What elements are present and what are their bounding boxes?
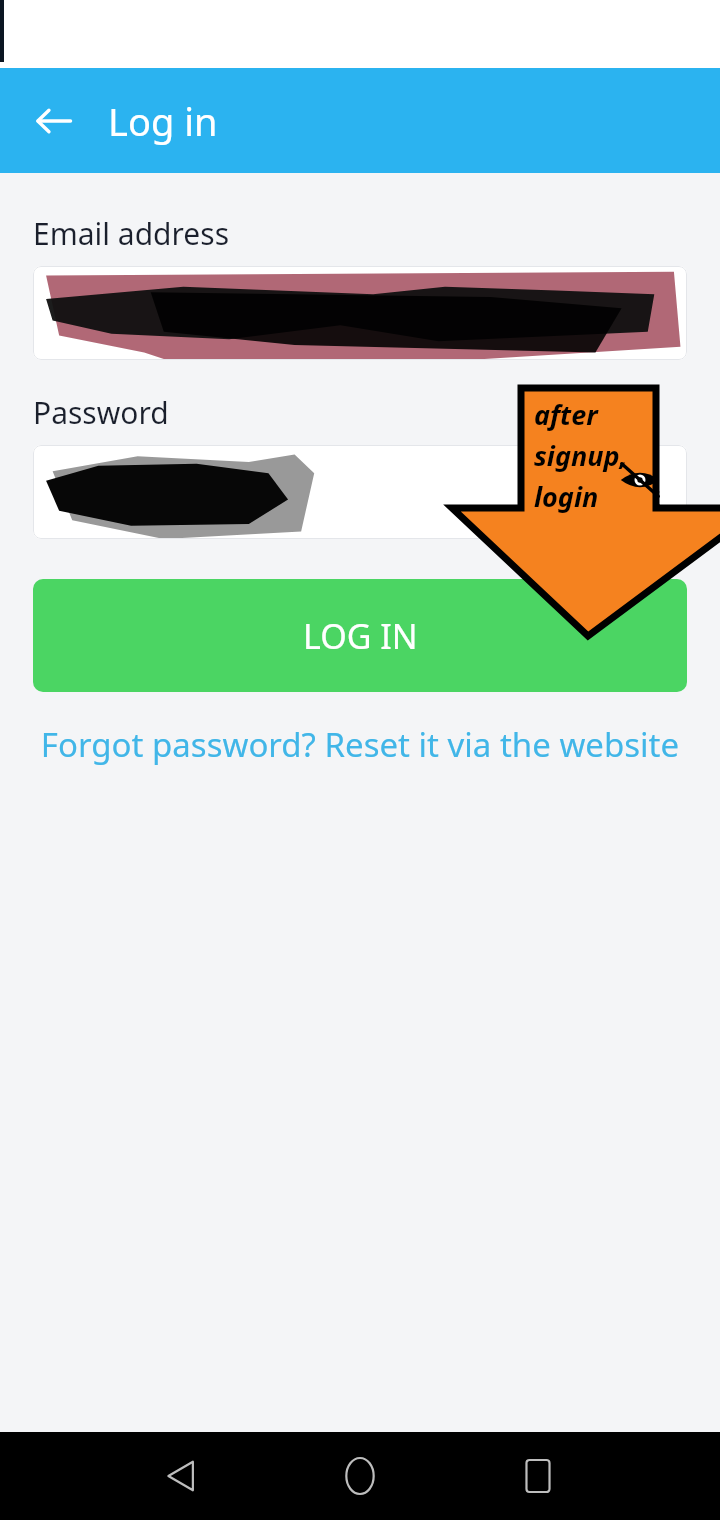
staticText: Password — [33, 392, 169, 433]
staticText: LOG IN — [303, 613, 418, 659]
button[interactable]: Recent apps — [506, 1444, 570, 1508]
button[interactable]: Show password — [615, 464, 671, 520]
button[interactable]: Forgot password? Reset it via the websit… — [33, 722, 687, 767]
button[interactable]: Back — [150, 1444, 214, 1508]
staticText: Forgot password? Reset it via the websit… — [33, 722, 687, 767]
button[interactable]: Back — [26, 93, 82, 149]
button[interactable] — [33, 266, 687, 360]
staticText: Email address — [33, 213, 230, 254]
button[interactable]: Home — [328, 1444, 392, 1508]
button[interactable]: Show password — [33, 445, 687, 539]
staticText: after — [534, 396, 598, 433]
staticText: Log in — [108, 95, 218, 147]
staticText: signup, — [534, 437, 628, 474]
staticText: login — [534, 478, 599, 515]
button[interactable]: LOG IN — [33, 579, 687, 692]
